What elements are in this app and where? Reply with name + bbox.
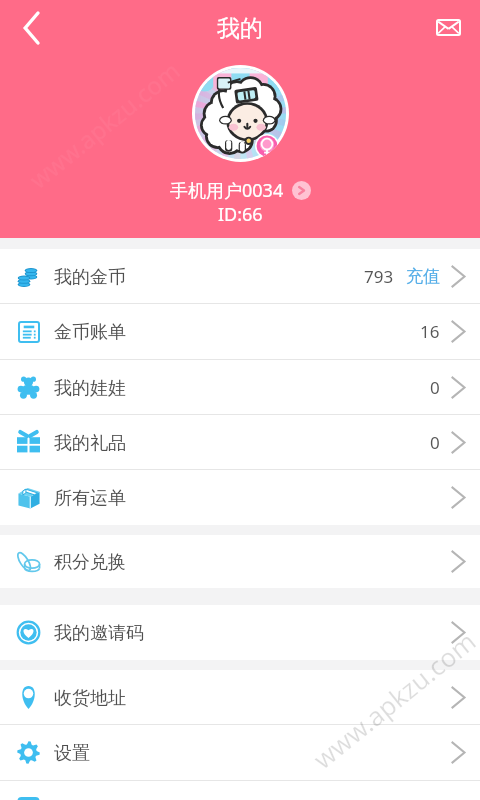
staticText: 积分兑换	[54, 551, 126, 574]
staticText: 我的	[217, 14, 263, 43]
staticText: 793	[364, 265, 394, 288]
button[interactable]: 我的金币	[0, 249, 480, 303]
staticText: 我的礼品	[54, 432, 126, 455]
button[interactable]: 积分兑换	[0, 535, 480, 588]
button[interactable]: 所有运单	[0, 470, 480, 525]
button[interactable]: 金币账单	[0, 304, 480, 359]
button[interactable]: Back	[8, 4, 56, 52]
button[interactable]: Avatar	[192, 65, 289, 162]
staticText: 所有运单	[54, 487, 126, 510]
staticText: 我的金币	[54, 266, 126, 289]
button[interactable]: 设置	[0, 725, 480, 780]
button[interactable]: 收货地址	[0, 670, 480, 724]
button[interactable]: 我的礼品	[0, 415, 480, 469]
staticText: 金币账单	[54, 321, 126, 344]
staticText: 16	[420, 320, 440, 343]
staticText: 设置	[54, 742, 90, 765]
staticText: 0	[430, 376, 440, 399]
staticText: 充值	[406, 266, 440, 287]
staticText: 我的娃娃	[54, 377, 126, 400]
button[interactable]: Messages	[424, 4, 472, 50]
staticText: 手机用户0034	[170, 178, 284, 203]
staticText: 0	[430, 431, 440, 454]
button[interactable]: Profile detail	[292, 181, 311, 200]
staticText: 我的邀请码	[54, 622, 144, 645]
button[interactable]: 我的娃娃	[0, 360, 480, 414]
staticText: www.apkzu.com	[305, 623, 480, 776]
button[interactable]: 意见反馈	[0, 781, 480, 800]
staticText: 收货地址	[54, 687, 126, 710]
staticText: www.apkzu.com	[22, 53, 187, 196]
button[interactable]: 我的邀请码	[0, 605, 480, 660]
staticText: ID:66	[218, 202, 263, 227]
